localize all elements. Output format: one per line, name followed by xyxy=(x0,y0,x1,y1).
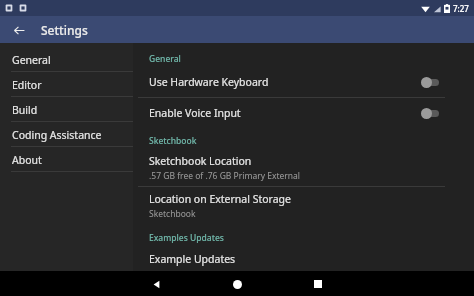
button[interactable]: Use Hardware Keyboard xyxy=(133,67,474,97)
staticText: 7:27 xyxy=(453,3,469,14)
staticText: Enable Voice Input xyxy=(149,106,421,120)
button[interactable]: About xyxy=(0,147,133,172)
staticText: Examples Updates xyxy=(149,232,224,244)
staticText: Sketchbook xyxy=(149,208,196,220)
button[interactable]: Home xyxy=(226,273,248,295)
button[interactable]: Build xyxy=(0,97,133,122)
staticText: About xyxy=(12,153,42,167)
button[interactable]: General xyxy=(0,47,133,72)
staticText: General xyxy=(12,53,51,67)
staticText: Location on External Storage xyxy=(149,192,291,206)
button[interactable]: Back xyxy=(145,273,167,295)
button[interactable]: Location on External Storage xyxy=(133,187,474,224)
button[interactable]: Coding Assistance xyxy=(0,122,133,147)
staticText: Coding Assistance xyxy=(12,128,102,142)
button[interactable]: Example Updates xyxy=(133,252,474,266)
button[interactable]: Editor xyxy=(0,72,133,97)
staticText: Example Updates xyxy=(149,252,236,266)
button[interactable]: Back xyxy=(8,19,30,41)
button[interactable]: Recent apps xyxy=(307,273,329,295)
staticText: .57 GB free of .76 GB Primary External xyxy=(149,170,301,182)
staticText: Sketchbook Location xyxy=(149,154,252,168)
staticText: Settings xyxy=(41,22,88,38)
staticText: Build xyxy=(12,103,38,117)
staticText: Use Hardware Keyboard xyxy=(149,75,421,89)
staticText: Sketchbook xyxy=(149,135,197,147)
button[interactable]: Sketchbook Location xyxy=(133,149,474,186)
button[interactable]: Enable Voice Input xyxy=(133,98,474,128)
staticText: General xyxy=(149,53,181,65)
staticText: Editor xyxy=(12,78,42,92)
